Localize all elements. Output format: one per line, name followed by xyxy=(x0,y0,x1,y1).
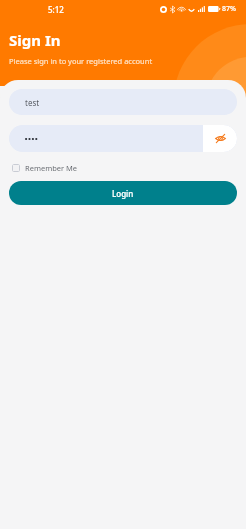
staticText: Sign In xyxy=(9,30,61,50)
staticText: test xyxy=(25,97,40,108)
staticText: Login xyxy=(112,188,134,199)
button[interactable] xyxy=(9,125,237,152)
button[interactable]: Remember Me xyxy=(9,161,84,175)
staticText: Remember Me xyxy=(25,163,78,173)
staticText: 5:12 xyxy=(48,4,64,15)
button[interactable]: test xyxy=(9,89,237,115)
staticText: 87% xyxy=(222,4,236,14)
staticText: Please sign in to your registered accoun… xyxy=(9,56,153,66)
button[interactable]: Toggle password visibility xyxy=(203,125,237,152)
button[interactable]: Login xyxy=(9,181,237,205)
